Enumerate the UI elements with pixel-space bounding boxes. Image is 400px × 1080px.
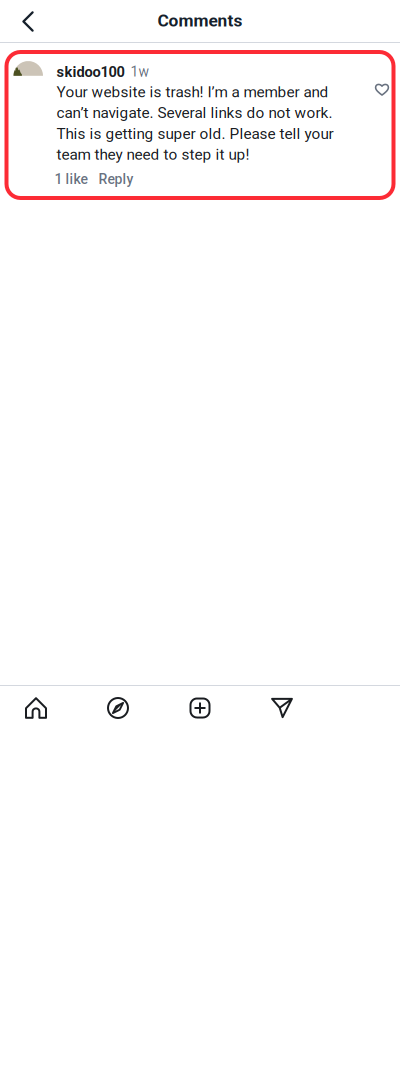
button[interactable]: Explore <box>77 685 159 731</box>
button[interactable]: Like <box>369 77 395 101</box>
staticText: 1w <box>130 64 149 80</box>
button[interactable]: Create <box>159 685 241 731</box>
staticText: skidoo100 <box>56 63 124 80</box>
button[interactable]: Messages <box>241 685 323 731</box>
button[interactable]: Reply <box>99 171 134 187</box>
staticText: 1 like <box>55 171 88 187</box>
button[interactable]: Back <box>0 0 56 43</box>
button[interactable]: Home <box>0 685 77 731</box>
staticText: Comments <box>157 10 242 31</box>
staticText: Reply <box>99 171 134 187</box>
staticText: Your website is trash! I’m a member and … <box>56 83 333 164</box>
